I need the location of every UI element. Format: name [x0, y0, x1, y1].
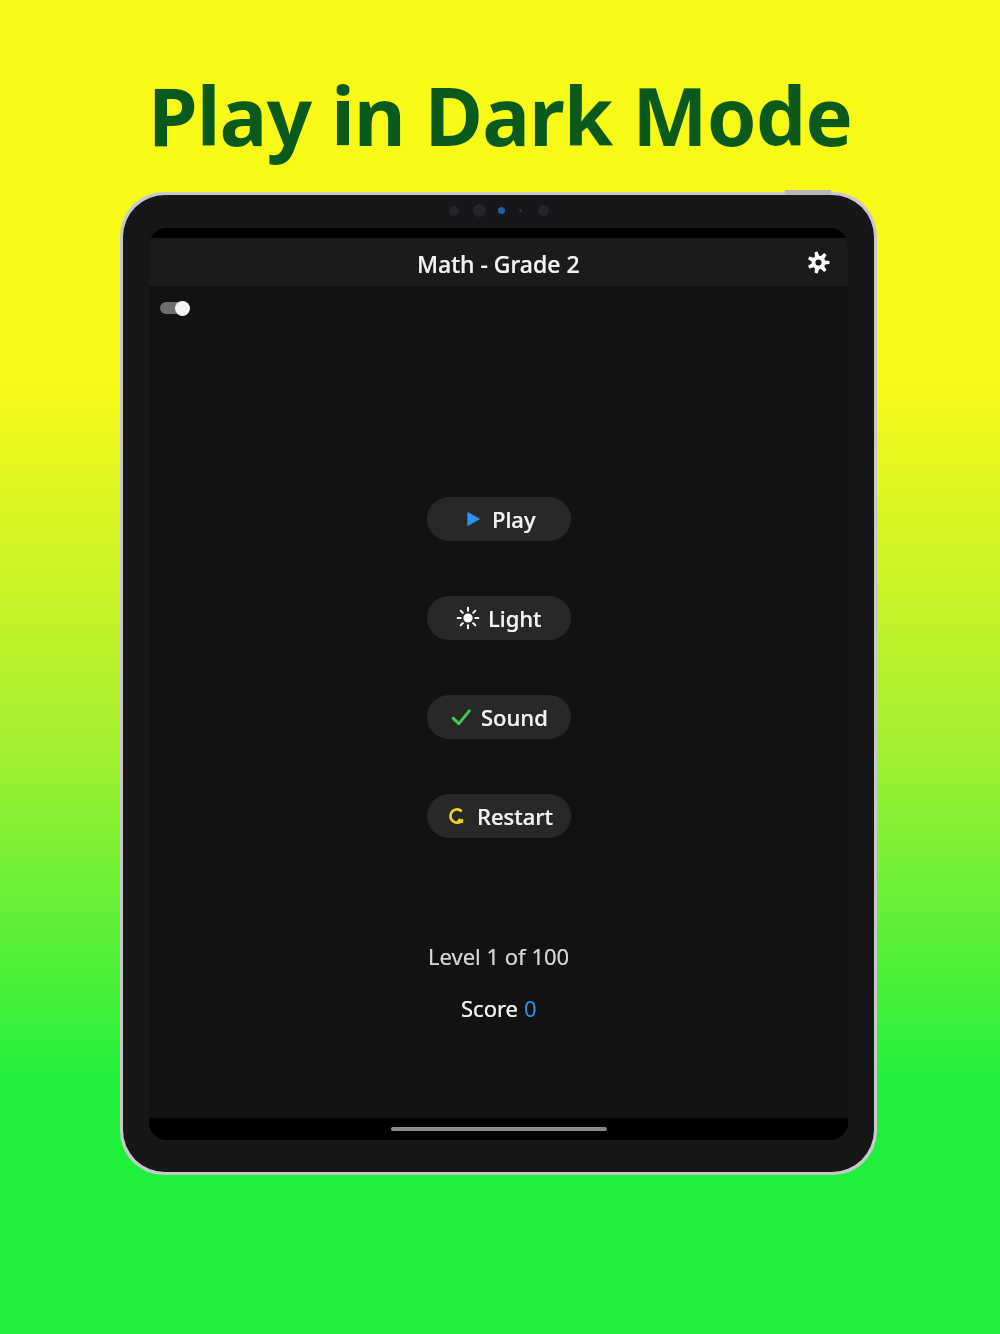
staticText: Math - Grade 2	[417, 248, 580, 279]
button[interactable]: Sound	[427, 695, 571, 739]
button[interactable]: Toggle	[160, 300, 190, 316]
staticText: Score	[461, 993, 524, 1023]
button[interactable]: Settings	[798, 242, 838, 282]
staticText: Play in Dark Mode	[0, 60, 1000, 169]
staticText: Level 1 of 100	[428, 941, 570, 971]
staticText: Play	[492, 504, 536, 534]
staticText: Sound	[481, 702, 548, 732]
staticText: 0	[524, 993, 537, 1023]
button[interactable]: Restart	[427, 794, 571, 838]
staticText: Light	[488, 603, 542, 633]
staticText: Restart	[477, 801, 553, 831]
button[interactable]: Play	[427, 497, 571, 541]
button[interactable]: Light	[427, 596, 571, 640]
